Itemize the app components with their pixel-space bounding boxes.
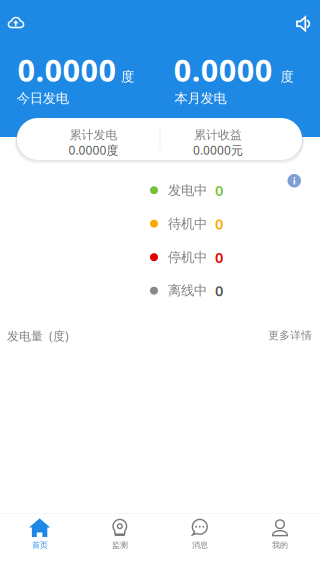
staticText: 0 bbox=[215, 247, 223, 267]
button[interactable]: 监测 bbox=[80, 514, 160, 573]
staticText: 度 bbox=[280, 68, 293, 85]
staticText: 0.0000 bbox=[17, 49, 116, 90]
staticText: 度 bbox=[121, 68, 134, 85]
staticText: 0 bbox=[215, 214, 223, 233]
staticText: 0.0000元 bbox=[193, 142, 243, 158]
staticText: 0.0000度 bbox=[68, 142, 118, 158]
button[interactable]: 停机中 bbox=[150, 247, 223, 267]
staticText: 发电量 (度) bbox=[7, 328, 69, 344]
staticText: 0 bbox=[215, 180, 223, 200]
staticText: 离线中 bbox=[168, 282, 207, 299]
staticText: 0 bbox=[215, 281, 223, 300]
staticText: 累计发电 bbox=[69, 128, 117, 142]
button[interactable]: Cloud sync bbox=[0, 9, 32, 36]
button[interactable]: Sound bbox=[288, 8, 320, 40]
staticText: 今日发电 bbox=[17, 90, 69, 106]
staticText: 本月发电 bbox=[174, 90, 226, 106]
staticText: 更多详情 bbox=[268, 329, 312, 342]
staticText: 发电中 bbox=[168, 182, 207, 198]
button[interactable]: 首页 bbox=[0, 514, 80, 573]
staticText: 首页 bbox=[32, 540, 48, 550]
button[interactable]: 更多详情 bbox=[268, 329, 312, 342]
staticText: 我的 bbox=[272, 540, 288, 550]
staticText: 0.0000 bbox=[174, 49, 273, 90]
staticText: 消息 bbox=[192, 540, 208, 550]
button[interactable]: 发电中 bbox=[150, 180, 223, 200]
staticText: 累计收益 bbox=[194, 128, 242, 142]
button[interactable]: 我的 bbox=[240, 514, 320, 573]
button[interactable]: Info bbox=[287, 174, 301, 187]
staticText: 监测 bbox=[112, 540, 128, 550]
staticText: 待机中 bbox=[168, 215, 207, 232]
button[interactable]: 待机中 bbox=[150, 214, 223, 233]
staticText: 停机中 bbox=[168, 249, 207, 265]
button[interactable]: 离线中 bbox=[150, 281, 223, 300]
button[interactable]: 消息 bbox=[160, 514, 240, 573]
